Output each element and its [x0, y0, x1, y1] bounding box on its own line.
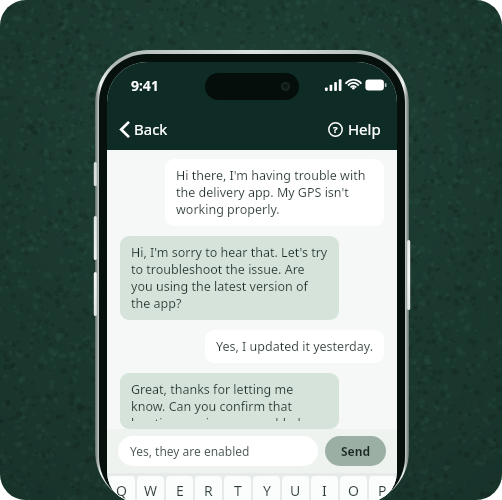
staticText: I — [322, 481, 327, 500]
staticText: O — [348, 481, 359, 500]
staticText: Yes, they are enabled — [130, 443, 250, 459]
staticText: T — [234, 481, 242, 500]
staticText: Hi, I'm sorry to hear that. Let's try to… — [131, 244, 328, 312]
button[interactable]: U — [282, 476, 309, 500]
button[interactable]: R — [195, 476, 222, 500]
button[interactable]: Hi, I'm sorry to hear that. Let's try to… — [120, 236, 339, 320]
button[interactable]: Send — [325, 436, 386, 466]
other: Help — [328, 122, 343, 137]
button[interactable]: Help — [316, 112, 397, 146]
staticText: Back — [134, 119, 168, 139]
button[interactable]: P — [369, 476, 396, 500]
staticText: 9:41 — [131, 76, 159, 95]
staticText: Help — [348, 119, 381, 139]
button[interactable]: O — [340, 476, 367, 500]
staticText: R — [204, 481, 213, 500]
button[interactable]: W — [137, 476, 164, 500]
button[interactable]: E — [166, 476, 193, 500]
button[interactable]: Back — [107, 112, 180, 146]
button[interactable]: I — [311, 476, 338, 500]
button[interactable]: Great, thanks for letting me know. Can y… — [120, 373, 339, 429]
staticText: Q — [116, 481, 127, 500]
staticText: P — [378, 481, 387, 500]
staticText: Yes, I updated it yesterday. — [216, 338, 373, 355]
button[interactable]: Q — [108, 476, 135, 500]
staticText: Hi there, I'm having trouble with the de… — [176, 167, 373, 218]
staticText: Send — [341, 443, 371, 459]
staticText: U — [290, 481, 301, 500]
button[interactable]: T — [224, 476, 251, 500]
staticText: Y — [263, 481, 271, 500]
button[interactable]: Y — [253, 476, 280, 500]
staticText: ? — [333, 123, 338, 136]
button[interactable]: Yes, they are enabled — [118, 436, 318, 466]
button[interactable]: Hi there, I'm having trouble with the de… — [165, 159, 384, 226]
staticText: Great, thanks for letting me know. Can y… — [131, 381, 328, 421]
staticText: W — [144, 481, 158, 500]
button[interactable]: Yes, I updated it yesterday. — [205, 330, 384, 363]
staticText: E — [176, 481, 184, 500]
